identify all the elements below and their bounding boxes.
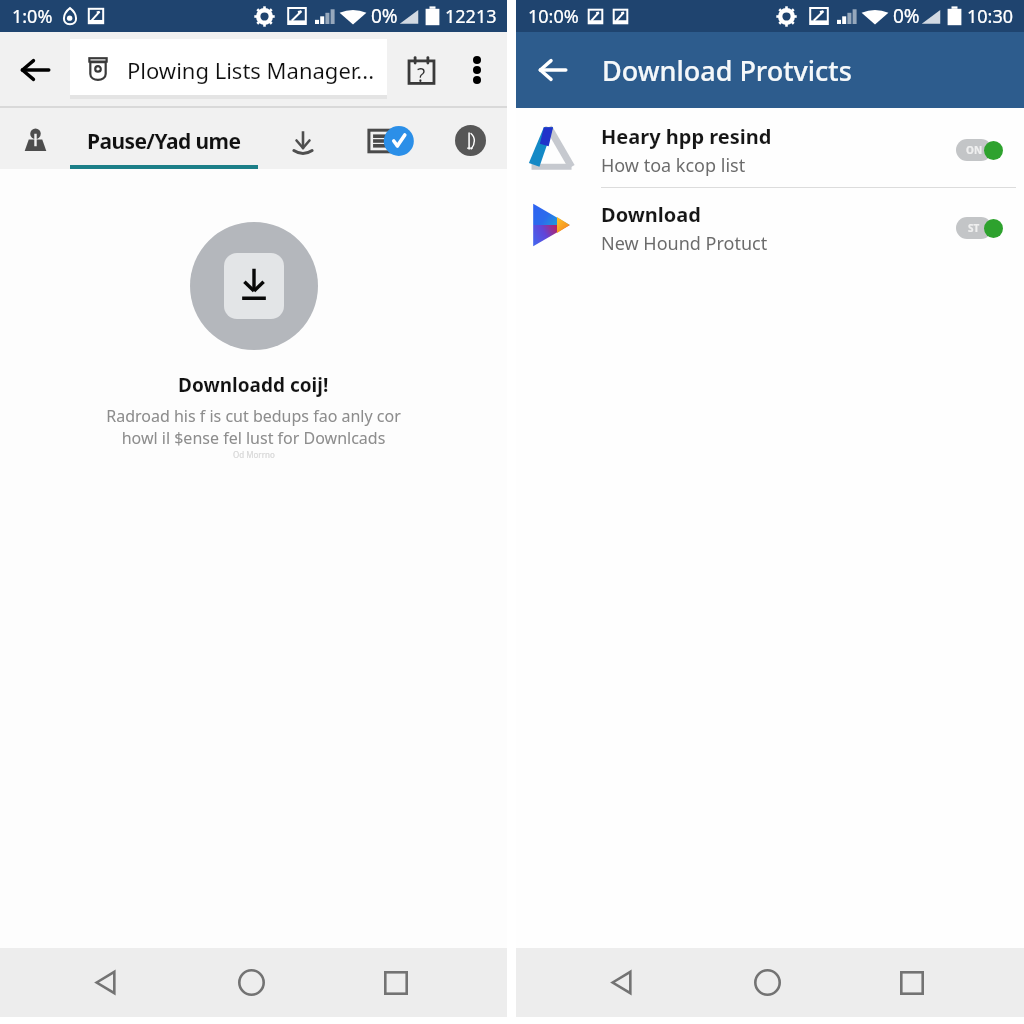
button[interactable]: Plowing Lists Manager... [70,39,387,95]
button[interactable]: Home [206,948,296,1017]
staticText: Pause/Yad ume [87,127,241,156]
staticText: 1:0% [12,4,53,29]
staticText: Downloadd coij! [178,372,329,398]
staticText: Radroad his f is cut bedups fao anly cor… [106,405,401,449]
staticText: ON [966,143,983,157]
button[interactable]: Download [516,186,1024,264]
button[interactable]: Pause/Yad ume [70,108,258,169]
button[interactable]: Toggle Download [956,214,1003,236]
button[interactable]: Profile [440,119,500,161]
button[interactable]: Back [0,32,70,108]
staticText: Plowing Lists Manager... [127,55,375,85]
button[interactable]: Help [387,32,443,108]
button[interactable]: Heary hpp resind [516,108,1024,186]
staticText: 0% [893,3,920,29]
button[interactable]: Back [61,948,151,1017]
staticText: Download [601,201,701,228]
staticText: How toa kcop list [601,153,746,178]
staticText: 10:0% [528,4,579,29]
button[interactable]: Recents [867,948,957,1017]
staticText: 10:30 [967,4,1014,29]
button[interactable]: Account [14,121,56,159]
staticText: 0% [371,3,398,29]
staticText: Heary hpp resind [601,123,772,150]
staticText: Download Protvicts [602,52,852,89]
staticText: ? [417,62,426,88]
button[interactable]: Toggle Heary hpp resind [956,136,1003,158]
staticText: ST [968,221,980,235]
button[interactable]: Back [577,948,667,1017]
button[interactable]: More options [447,32,507,108]
button[interactable]: Home [722,948,812,1017]
button[interactable]: Download [280,121,326,163]
staticText: 12213 [445,4,497,29]
staticText: Od Morrno [233,449,275,460]
button[interactable]: Back [516,32,588,108]
staticText: New Hound Protuct [601,231,768,256]
button[interactable]: Verified list [360,120,422,162]
button[interactable]: Recents [351,948,441,1017]
